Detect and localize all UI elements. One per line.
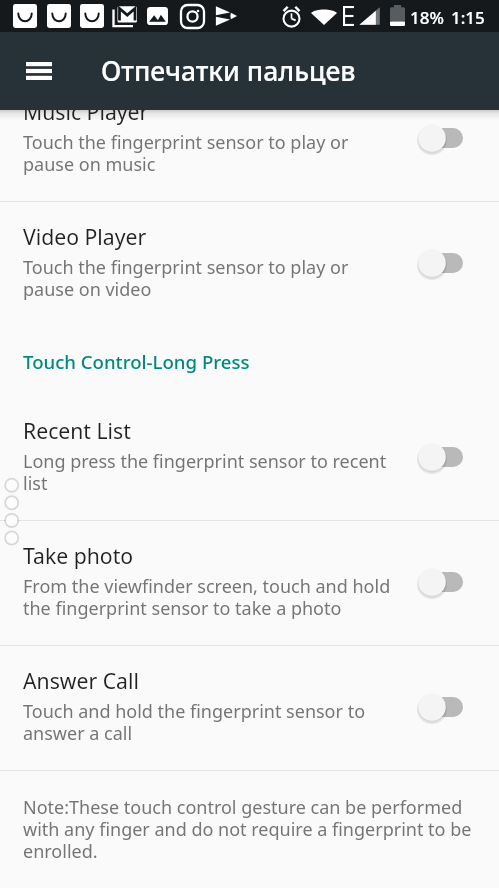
staticText: Take photo [23, 541, 134, 570]
button[interactable]: Toggle setting [417, 248, 463, 278]
button[interactable]: Toggle setting [417, 442, 463, 472]
button[interactable]: Toggle setting [417, 123, 463, 153]
button[interactable]: Take photo [0, 521, 499, 645]
button[interactable]: Answer Call [0, 646, 499, 770]
staticText: Touch the fingerprint sensor to play or … [23, 255, 349, 302]
staticText: 1:15 [451, 6, 485, 29]
staticText: From the viewfinder screen, touch and ho… [23, 574, 391, 621]
staticText: Answer Call [23, 666, 139, 695]
staticText: Long press the fingerprint sensor to rec… [23, 449, 387, 496]
staticText: Music Player [23, 97, 149, 126]
button[interactable]: Toggle setting [417, 567, 463, 597]
button[interactable]: Open navigation menu [15, 47, 63, 95]
staticText: 18% [410, 6, 444, 29]
staticText: Note:These touch control gesture can be … [23, 795, 472, 864]
button[interactable]: Recent List [0, 396, 499, 520]
button[interactable]: Toggle setting [417, 692, 463, 722]
staticText: Touch and hold the fingerprint sensor to… [23, 699, 366, 746]
staticText: Video Player [23, 222, 147, 251]
staticText: Touch the fingerprint sensor to play or … [23, 130, 349, 177]
staticText: Отпечатки пальцев [101, 53, 356, 89]
button[interactable]: Music Player [0, 77, 499, 201]
button[interactable]: Video Player [0, 202, 499, 326]
staticText: Touch Control-Long Press [23, 349, 250, 374]
staticText: Recent List [23, 416, 131, 445]
